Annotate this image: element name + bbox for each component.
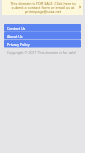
- staticText: This domain is FOR SALE. Click here to s…: [10, 1, 76, 14]
- staticText: Privacy Policy: [7, 42, 30, 47]
- staticText: About Us: [7, 34, 23, 39]
- button[interactable]: Privacy Policy: [4, 40, 81, 48]
- staticText: Contact Us: [7, 26, 26, 31]
- button[interactable]: About Us: [4, 32, 81, 40]
- button[interactable]: Contact Us: [4, 24, 81, 32]
- staticText: Copyright © 2017 This domain is for sale…: [7, 50, 77, 55]
- button[interactable]: Open contact form: [77, 4, 82, 9]
- button[interactable]: This domain is FOR SALE. Click here to s…: [2, 0, 83, 15]
